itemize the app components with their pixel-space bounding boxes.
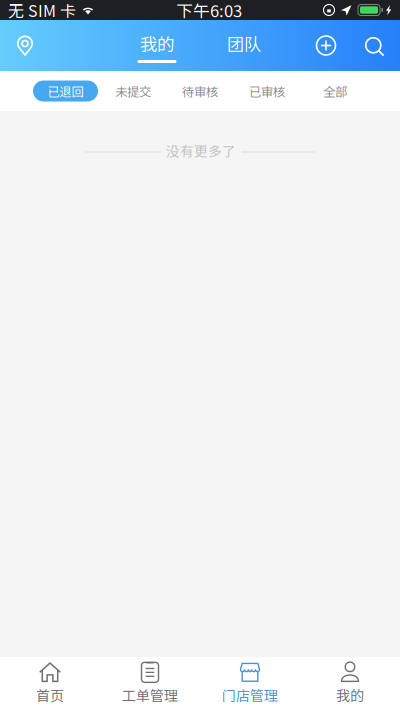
staticText: 下午6:03 — [176, 0, 242, 22]
button[interactable]: 全部 — [321, 80, 349, 101]
staticText: 门店管理 — [222, 685, 278, 705]
staticText: 全部 — [323, 82, 347, 100]
button[interactable]: 工单管理 — [100, 657, 200, 710]
button[interactable]: 未提交 — [113, 80, 153, 101]
staticText: 待审核 — [182, 82, 218, 100]
staticText: 工单管理 — [122, 685, 178, 705]
button[interactable]: 我的 — [300, 657, 400, 710]
staticText: 没有更多了 — [166, 141, 236, 160]
button[interactable]: 我的 — [125, 20, 189, 71]
button[interactable]: 待审核 — [180, 80, 220, 101]
button[interactable]: Add — [304, 20, 348, 71]
staticText: 团队 — [227, 31, 261, 56]
button[interactable]: Search — [355, 20, 395, 71]
button[interactable]: 团队 — [212, 20, 276, 71]
button[interactable]: 已退回 — [33, 80, 98, 101]
button[interactable]: 已审核 — [247, 80, 287, 101]
button[interactable]: 门店管理 — [200, 657, 300, 710]
button[interactable]: 首页 — [0, 657, 100, 710]
staticText: 未提交 — [115, 82, 151, 100]
button[interactable]: Location — [0, 20, 50, 71]
staticText: 已审核 — [249, 82, 285, 100]
staticText: 无 SIM 卡 — [8, 0, 76, 22]
staticText: 我的 — [336, 685, 364, 705]
staticText: 首页 — [36, 685, 64, 705]
staticText: 我的 — [140, 31, 174, 56]
staticText: 已退回 — [47, 82, 83, 100]
